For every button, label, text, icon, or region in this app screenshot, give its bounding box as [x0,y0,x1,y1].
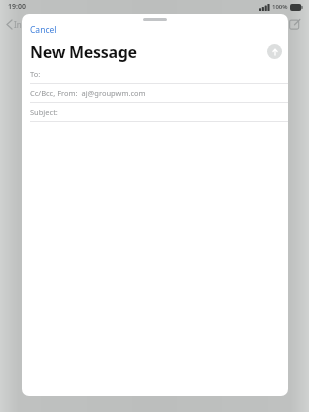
button[interactable]: To: [22,65,288,84]
staticText: Inbox [14,19,36,30]
button[interactable]: Inbox [5,17,38,32]
staticText: 19:00 [8,2,26,12]
button[interactable]: Subject: [22,103,288,122]
button[interactable]: Send [267,44,282,59]
button[interactable]: Cancel [26,22,61,38]
button[interactable]: Compose [285,15,303,33]
button[interactable]: Cc/Bcc, From: aj@groupwm.com [22,84,288,103]
staticText: Subject: [30,107,58,117]
staticText: Cc/Bcc, From: aj@groupwm.com [30,88,146,98]
staticText: 100% [272,3,288,11]
staticText: New Message [30,41,137,63]
staticText: To: [30,69,41,79]
